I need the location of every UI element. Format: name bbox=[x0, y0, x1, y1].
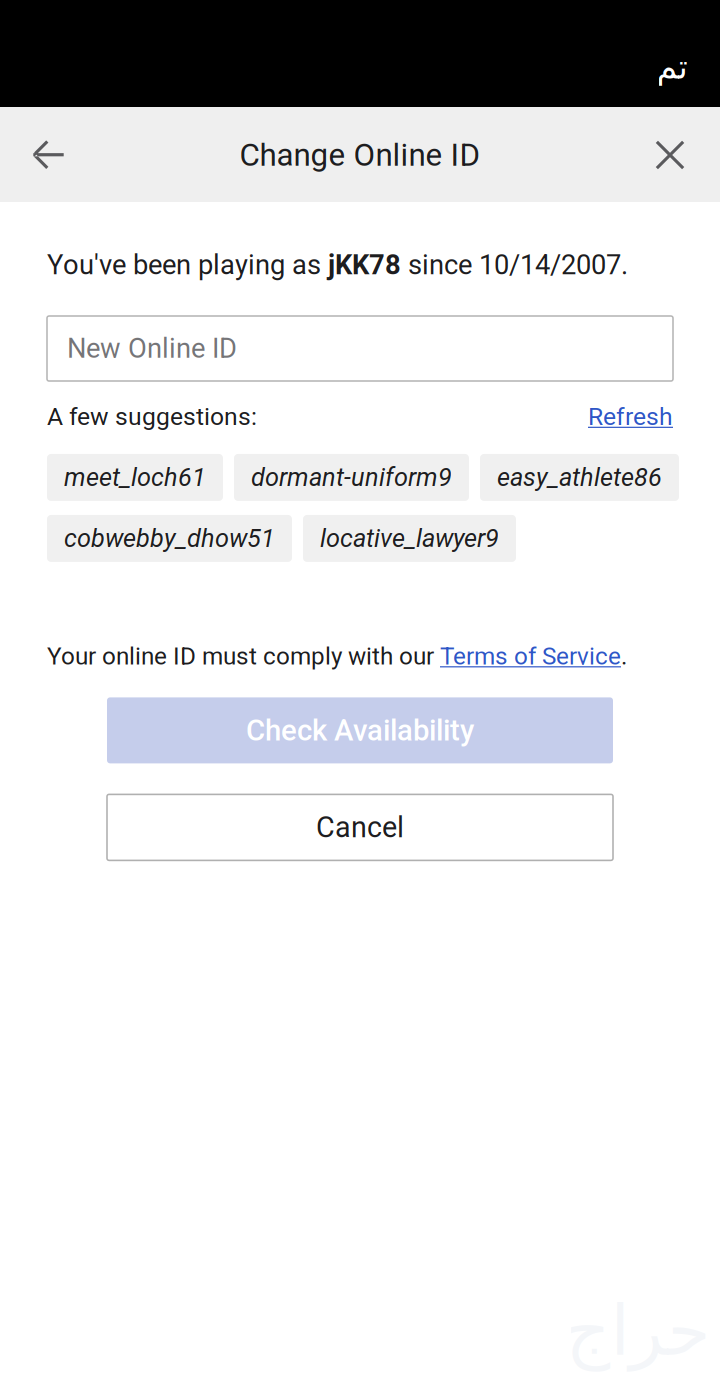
staticText: Refresh bbox=[588, 402, 673, 431]
staticText: . bbox=[621, 642, 627, 670]
button[interactable]: Terms of Service bbox=[440, 642, 621, 670]
button[interactable]: easy_athlete86 bbox=[480, 454, 679, 501]
button[interactable]: Close bbox=[637, 107, 703, 203]
button[interactable]: Check Availability bbox=[107, 697, 613, 763]
button[interactable]: meet_loch61 bbox=[47, 454, 223, 501]
staticText: Change Online ID bbox=[239, 137, 480, 173]
staticText: locative_lawyer9 bbox=[320, 524, 499, 553]
staticText: jKK78 bbox=[328, 249, 401, 281]
staticText: حراج bbox=[565, 1290, 710, 1371]
staticText: تم bbox=[656, 48, 687, 86]
staticText: Your online ID must comply with our bbox=[47, 642, 440, 670]
button[interactable]: Refresh bbox=[588, 402, 673, 431]
staticText: Terms of Service bbox=[440, 642, 621, 670]
staticText: cobwebby_dhow51 bbox=[64, 524, 275, 553]
button[interactable]: locative_lawyer9 bbox=[303, 515, 516, 562]
staticText: since 10/14/2007. bbox=[401, 249, 628, 281]
staticText: Check Availability bbox=[246, 713, 474, 748]
button[interactable]: Back bbox=[16, 107, 82, 203]
staticText: A few suggestions: bbox=[47, 402, 257, 431]
staticText: New Online ID bbox=[67, 332, 237, 364]
staticText: easy_athlete86 bbox=[497, 463, 662, 492]
button[interactable]: Cancel bbox=[107, 794, 613, 860]
staticText: meet_loch61 bbox=[64, 463, 206, 492]
button[interactable]: dormant-uniform9 bbox=[234, 454, 469, 501]
staticText: Cancel bbox=[316, 811, 404, 844]
staticText: You've been playing as bbox=[47, 249, 328, 281]
button[interactable]: cobwebby_dhow51 bbox=[47, 515, 292, 562]
staticText: dormant-uniform9 bbox=[251, 463, 452, 492]
